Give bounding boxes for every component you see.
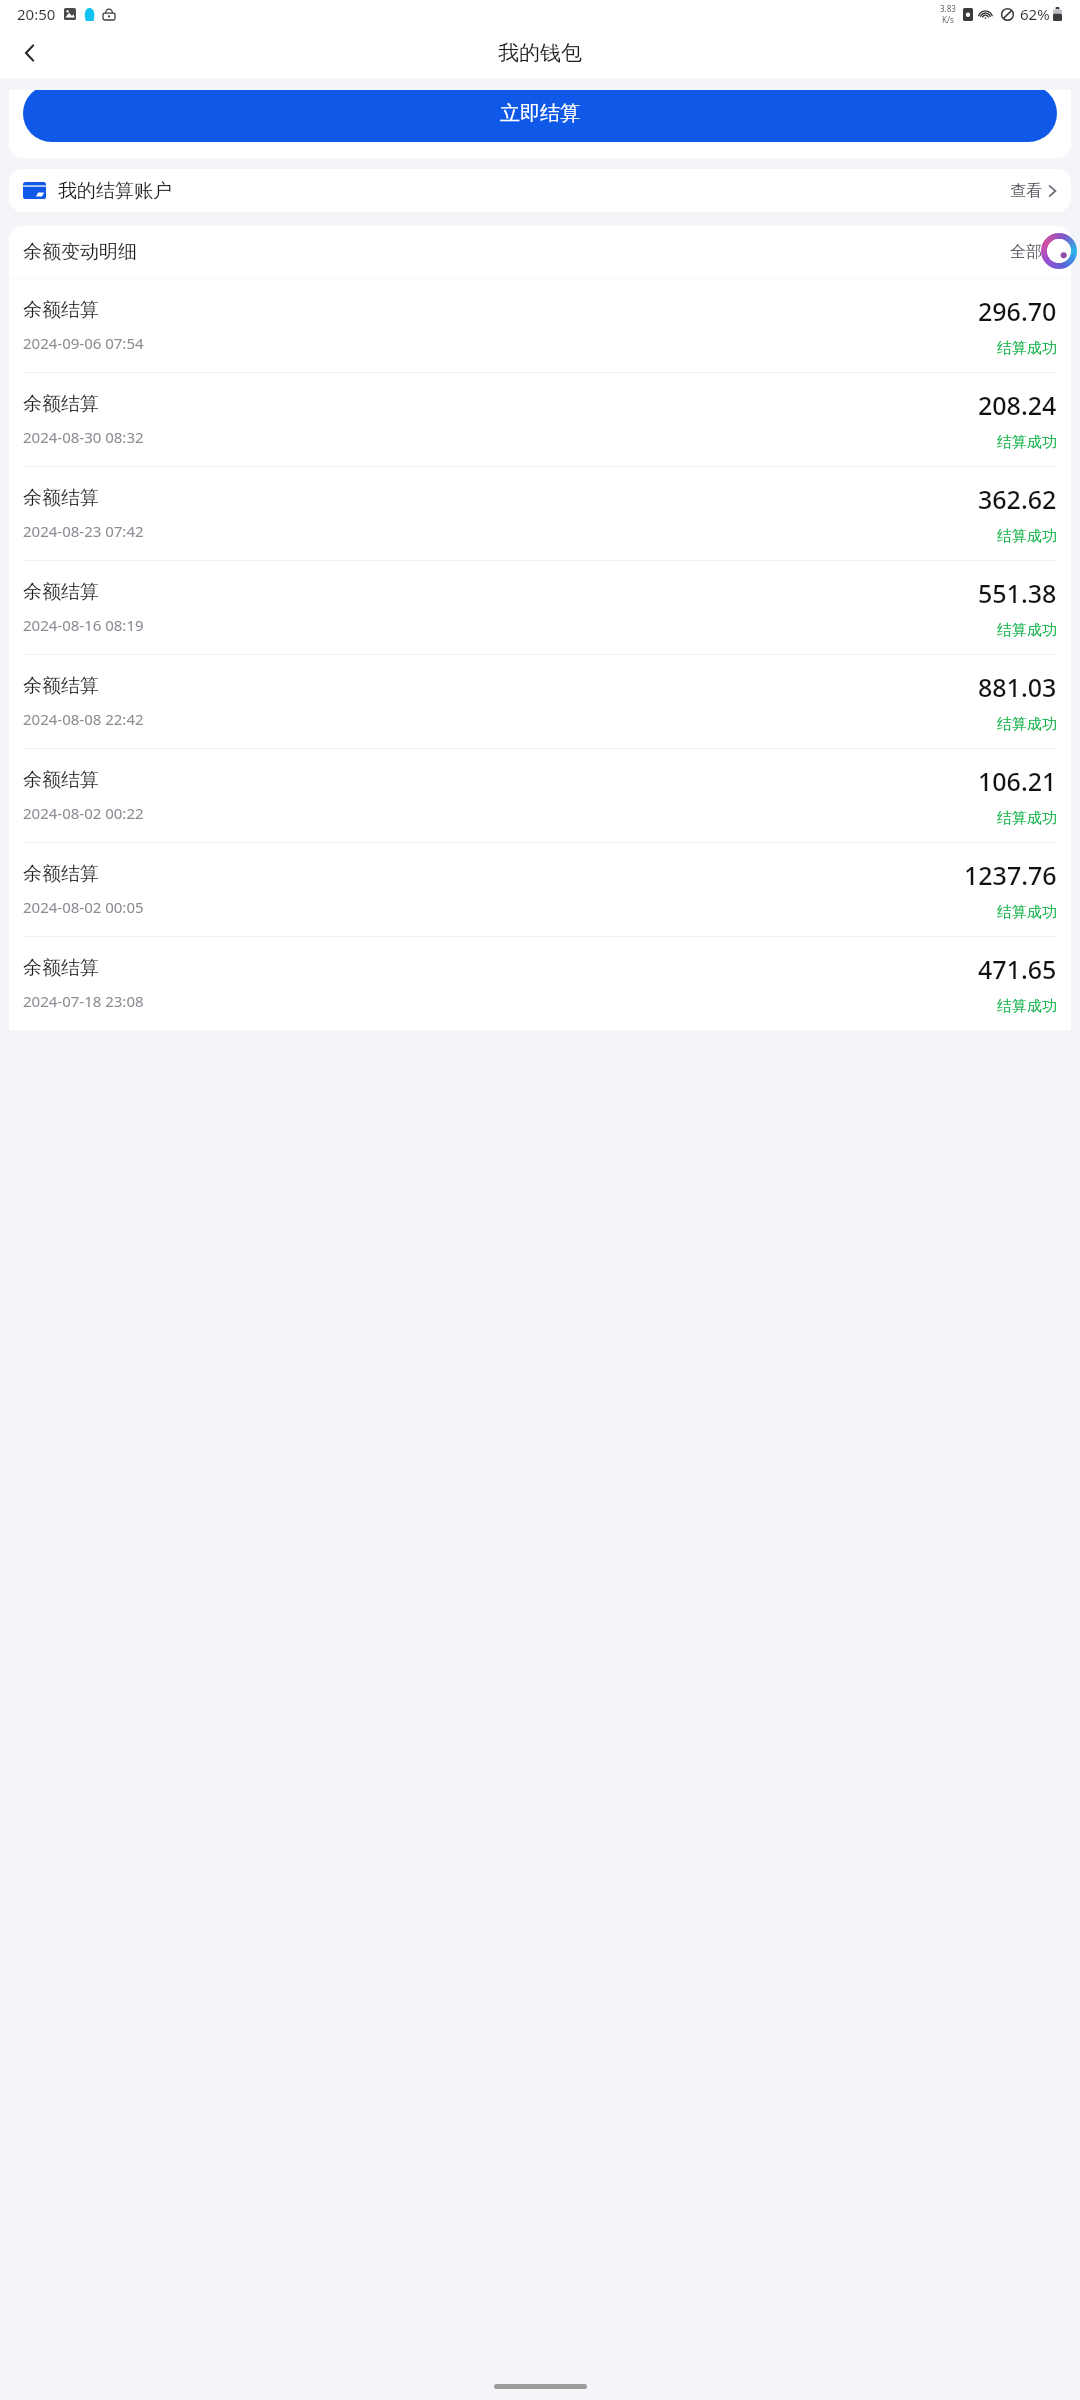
staticText: 2024-08-23 07:42 <box>23 521 144 541</box>
staticText: 362.62 <box>978 482 1057 516</box>
staticText: 结算成功 <box>997 903 1057 922</box>
staticText: 551.38 <box>978 576 1057 610</box>
button[interactable]: 余额结算 <box>9 279 1071 373</box>
staticText: 471.65 <box>978 952 1057 986</box>
staticText: K/s <box>942 14 954 25</box>
staticText: 余额变动明细 <box>23 240 137 264</box>
staticText: 296.70 <box>978 294 1057 328</box>
staticText: 结算成功 <box>997 339 1057 358</box>
staticText: 全部 <box>1010 242 1042 262</box>
staticText: 结算成功 <box>997 433 1057 452</box>
staticText: 我的结算账户 <box>58 179 172 203</box>
staticText: 查看 <box>1010 181 1042 201</box>
button[interactable]: 余额结算 <box>9 843 1071 937</box>
button[interactable]: 余额结算 <box>9 937 1071 1030</box>
staticText: 立即结算 <box>500 101 580 126</box>
staticText: 结算成功 <box>997 715 1057 734</box>
staticText: 余额结算 <box>23 768 99 792</box>
staticText: 2024-08-30 08:32 <box>23 427 144 447</box>
staticText: 2024-08-02 00:22 <box>23 803 144 823</box>
staticText: 1237.76 <box>964 858 1057 892</box>
staticText: 余额结算 <box>23 298 99 322</box>
staticText: 2024-09-06 07:54 <box>23 333 144 353</box>
button[interactable]: 余额结算 <box>9 655 1071 749</box>
staticText: 881.03 <box>978 670 1057 704</box>
staticText: 余额结算 <box>23 392 99 416</box>
button[interactable]: 我的结算账户 <box>9 169 1071 212</box>
button[interactable]: 余额结算 <box>9 373 1071 467</box>
staticText: 2024-08-16 08:19 <box>23 615 144 635</box>
staticText: 余额结算 <box>23 862 99 886</box>
staticText: 2024-08-02 00:05 <box>23 897 144 917</box>
staticText: 余额结算 <box>23 674 99 698</box>
button[interactable]: 余额结算 <box>9 749 1071 843</box>
staticText: 结算成功 <box>997 809 1057 828</box>
staticText: 余额结算 <box>23 956 99 980</box>
button[interactable]: 余额结算 <box>9 561 1071 655</box>
staticText: 3.83 <box>940 3 956 14</box>
staticText: 208.24 <box>978 388 1057 422</box>
staticText: 2024-08-08 22:42 <box>23 709 144 729</box>
staticText: 结算成功 <box>997 621 1057 640</box>
staticText: 106.21 <box>978 764 1057 798</box>
button[interactable]: 悬浮球 <box>1041 233 1077 269</box>
staticText: 结算成功 <box>997 997 1057 1016</box>
staticText: 结算成功 <box>997 527 1057 546</box>
staticText: 2024-07-18 23:08 <box>23 991 144 1011</box>
staticText: 余额结算 <box>23 486 99 510</box>
staticText: 20:50 <box>17 4 56 24</box>
staticText: 余额结算 <box>23 580 99 604</box>
button[interactable]: 余额变动明细 <box>9 226 1071 278</box>
staticText: 62% <box>1020 4 1050 24</box>
button[interactable]: 余额结算 <box>9 467 1071 561</box>
button[interactable]: 立即结算 <box>23 90 1057 142</box>
button[interactable]: 返回 <box>8 31 52 75</box>
staticText: 我的钱包 <box>498 40 582 66</box>
